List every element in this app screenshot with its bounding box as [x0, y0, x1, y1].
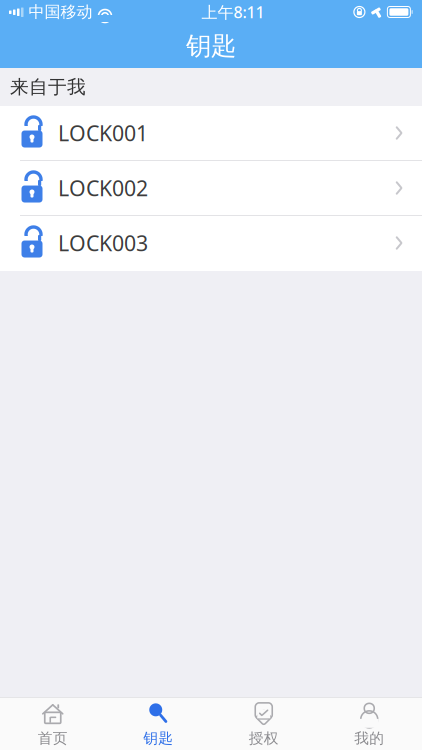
button[interactable]: LOCK002: [0, 161, 422, 216]
staticText: LOCK003: [58, 229, 148, 257]
button[interactable]: 授权: [211, 698, 316, 750]
staticText: 我的: [354, 729, 384, 747]
staticText: 钥匙: [143, 729, 173, 747]
staticText: 来自于我: [10, 75, 86, 98]
button[interactable]: 我的: [316, 698, 422, 750]
staticText: 钥匙: [186, 30, 236, 61]
staticText: LOCK001: [58, 119, 148, 147]
staticText: 中国移动: [28, 2, 92, 22]
staticText: LOCK002: [58, 174, 148, 202]
button[interactable]: 首页: [0, 698, 105, 750]
button[interactable]: LOCK001: [0, 106, 422, 161]
staticText: 首页: [38, 729, 68, 747]
staticText: 授权: [249, 729, 279, 747]
button[interactable]: 钥匙: [105, 698, 211, 750]
staticText: 上午8:11: [201, 1, 264, 23]
button[interactable]: LOCK003: [0, 216, 422, 271]
